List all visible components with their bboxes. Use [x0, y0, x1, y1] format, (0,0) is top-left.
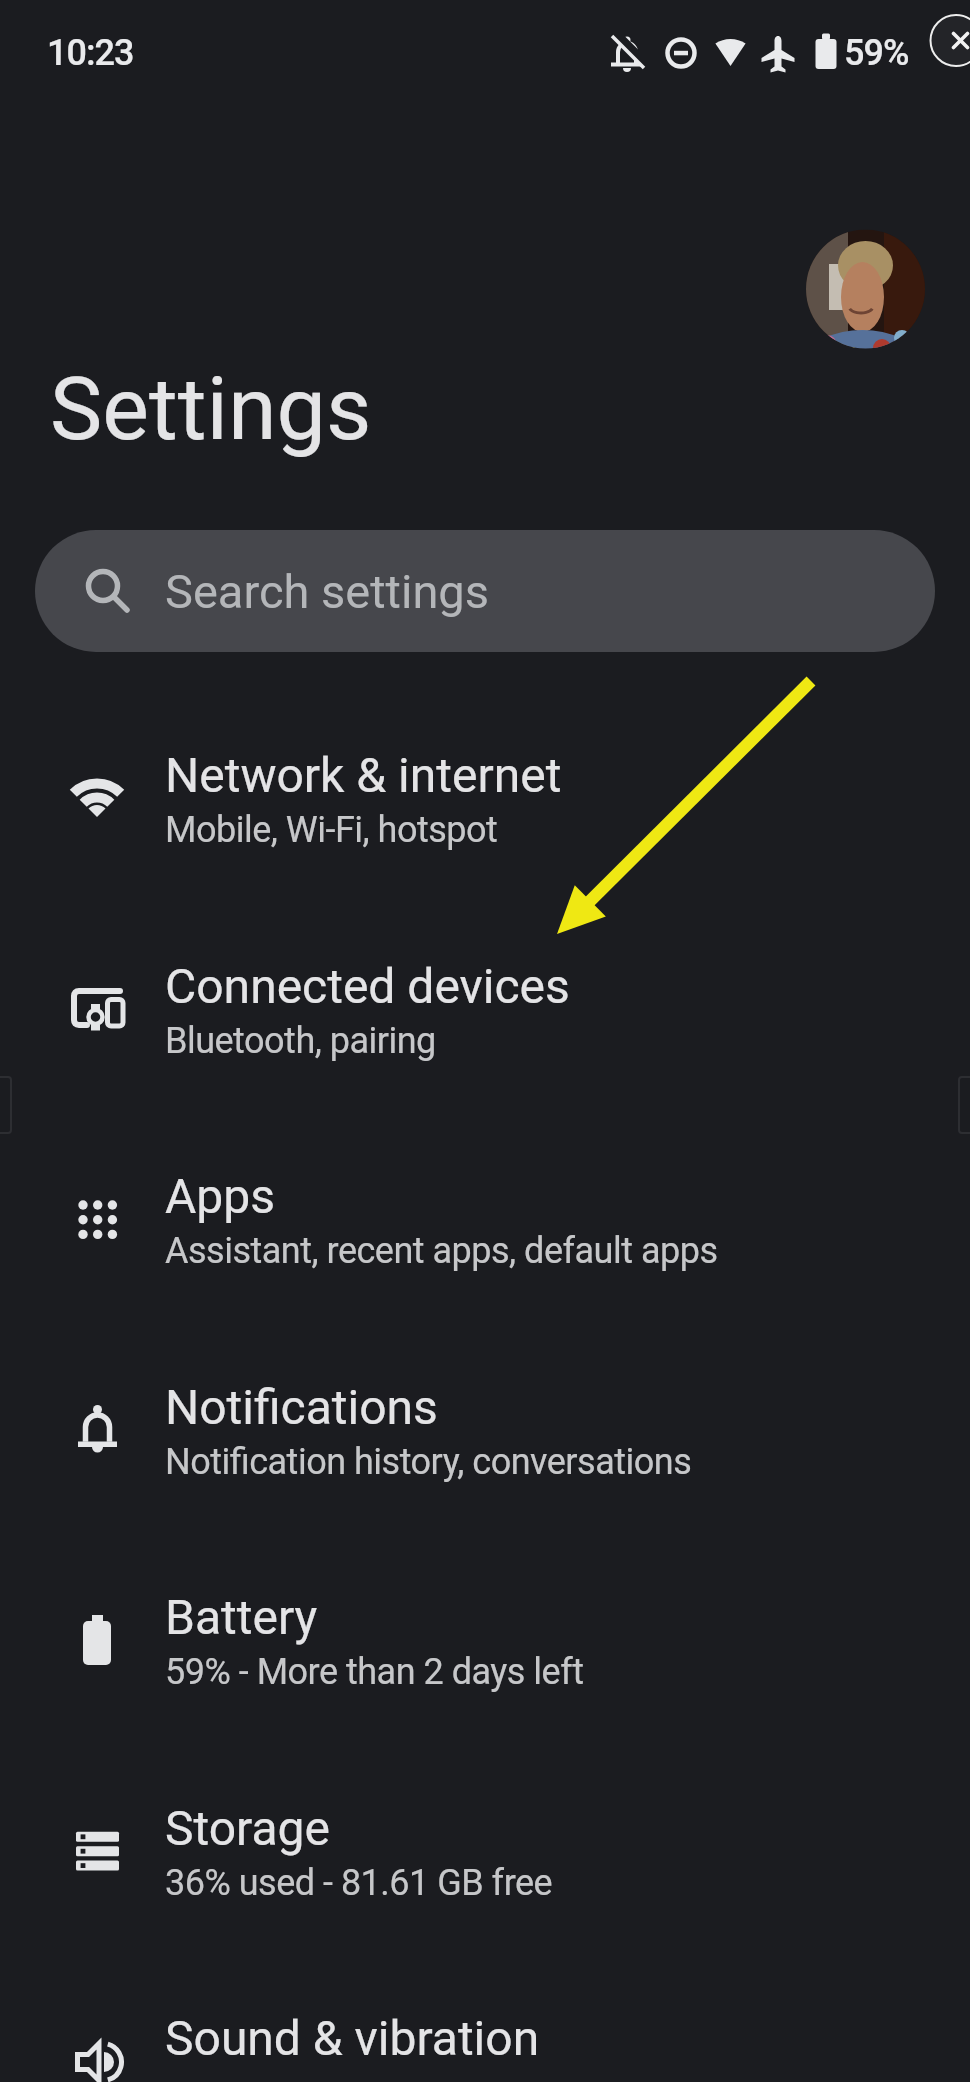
- button[interactable]: [35, 530, 935, 652]
- staticText: Bluetooth, pairing: [165, 1020, 436, 1062]
- button[interactable]: [0, 1958, 970, 2082]
- staticText: 36% used - 81.61 GB free: [165, 1862, 553, 1904]
- button[interactable]: [0, 1116, 970, 1326]
- staticText: Search settings: [165, 564, 489, 619]
- button[interactable]: [806, 229, 925, 348]
- staticText: 10:23: [47, 32, 134, 74]
- staticText: Network & internet: [165, 747, 562, 803]
- button[interactable]: [0, 1537, 970, 1747]
- staticText: Storage: [165, 1800, 330, 1856]
- staticText: Apps: [165, 1168, 275, 1224]
- staticText: Assistant, recent apps, default apps: [165, 1230, 718, 1272]
- staticText: Connected devices: [165, 958, 570, 1014]
- button[interactable]: [0, 695, 970, 905]
- staticText: Sound & vibration: [165, 2010, 540, 2066]
- staticText: Notification history, conversations: [165, 1441, 692, 1483]
- staticText: Battery: [165, 1589, 318, 1645]
- staticText: 59% - More than 2 days left: [165, 1651, 584, 1693]
- staticText: Mobile, Wi-Fi, hotspot: [165, 809, 498, 851]
- staticText: 59%: [844, 32, 909, 74]
- button[interactable]: [0, 906, 970, 1116]
- staticText: Settings: [50, 357, 372, 460]
- button[interactable]: [0, 1748, 970, 1958]
- staticText: Notifications: [165, 1379, 438, 1435]
- button[interactable]: [0, 1327, 970, 1537]
